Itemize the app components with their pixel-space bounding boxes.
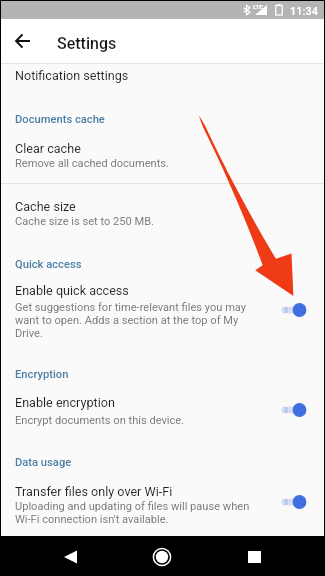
button[interactable]: Toggle setting	[278, 399, 310, 421]
button[interactable]: Home	[142, 537, 182, 576]
staticText: Quick access	[15, 258, 258, 271]
staticText: Documents cache	[15, 113, 258, 126]
button[interactable]	[0, 64, 325, 111]
staticText: Encryption	[15, 368, 258, 381]
staticText: Uploading and updating of files will pau…	[15, 500, 258, 526]
staticText: Encrypt documents on this device.	[15, 414, 258, 427]
button[interactable]	[0, 475, 325, 530]
staticText: LTE	[253, 3, 263, 10]
staticText: 11:34	[290, 5, 318, 18]
button[interactable]	[0, 184, 325, 237]
staticText: Settings	[57, 34, 117, 53]
button[interactable]: Back	[50, 537, 90, 576]
staticText: Enable quick access	[15, 283, 258, 298]
staticText: Notification settings	[15, 68, 258, 83]
staticText: Data usage	[15, 456, 258, 469]
button[interactable]: Navigate up	[0, 19, 44, 63]
staticText: Clear cache	[15, 141, 258, 156]
staticText: Cache size is set to 250 MB.	[15, 215, 258, 228]
staticText: Get suggestions for time-relevant files …	[15, 301, 258, 340]
button[interactable]: Toggle setting	[278, 299, 310, 321]
button[interactable]	[0, 275, 325, 345]
staticText: Enable encryption	[15, 395, 258, 410]
staticText: Transfer files only over Wi-Fi	[15, 484, 258, 499]
button[interactable]: Recent apps	[234, 537, 274, 576]
button[interactable]: Toggle setting	[278, 491, 310, 513]
button[interactable]	[0, 131, 325, 183]
staticText: Cache size	[15, 199, 258, 214]
staticText: Remove all cached documents.	[15, 157, 258, 170]
button[interactable]	[0, 386, 325, 431]
